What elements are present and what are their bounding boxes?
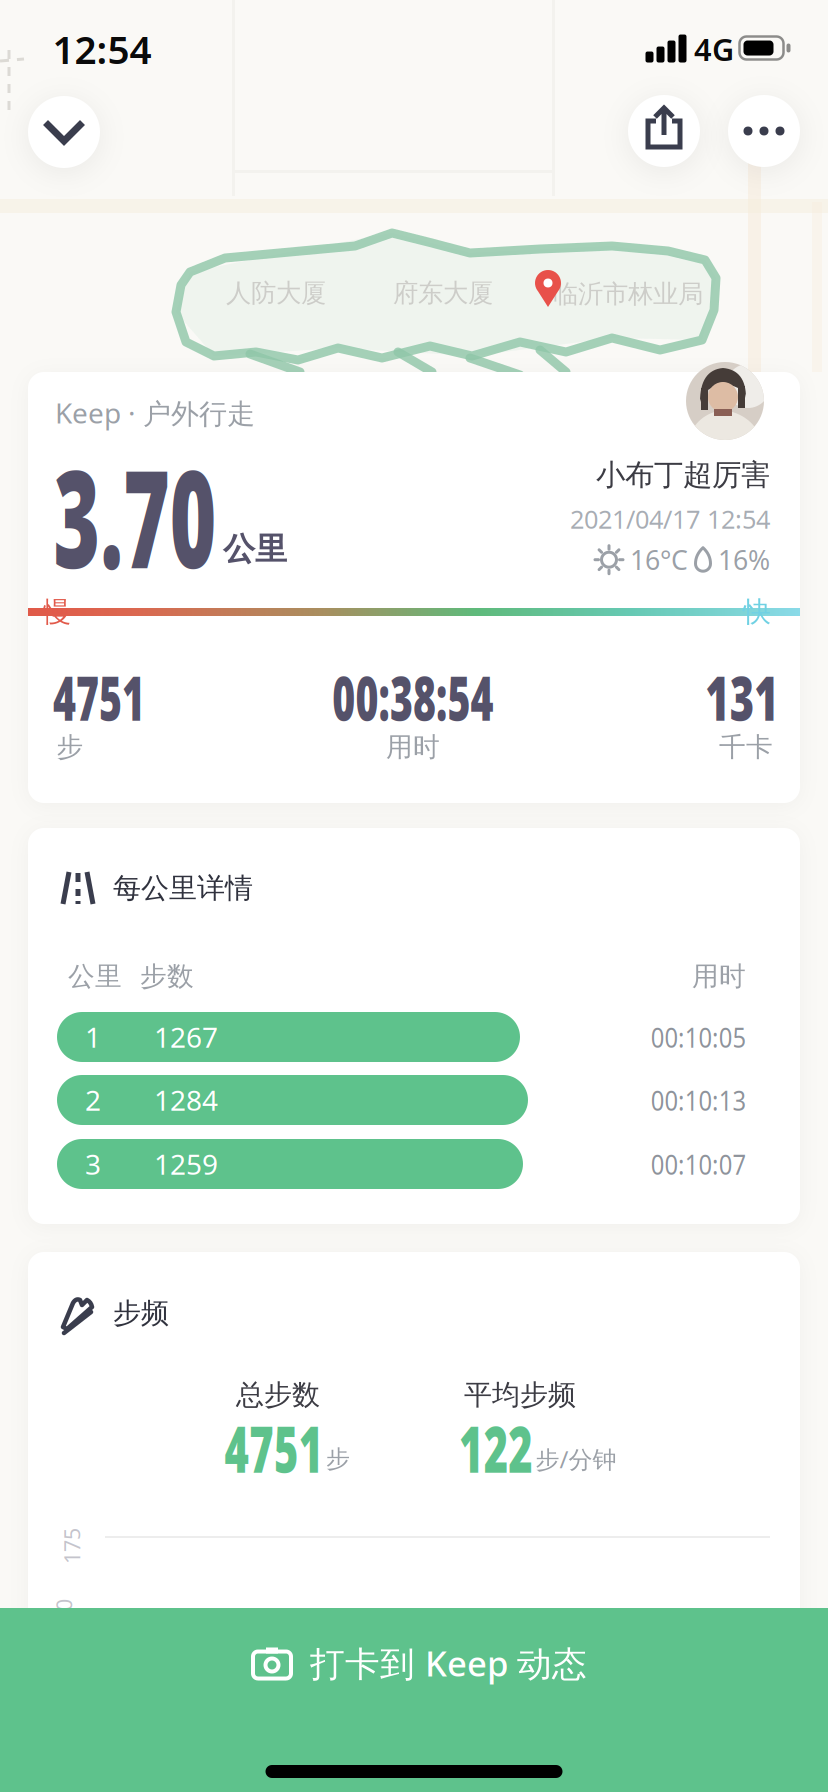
staticText: 4751 — [27, 656, 171, 738]
staticText: 4G — [694, 29, 734, 69]
staticText: 慢 — [43, 595, 71, 629]
staticText: 快 — [743, 595, 771, 629]
staticText: 00:38:54 — [287, 656, 539, 738]
staticText: 1267 — [154, 1018, 218, 1056]
staticText: 临沂市林业局 — [553, 278, 703, 309]
staticText: 步/分钟 — [535, 1443, 616, 1475]
staticText: 16% — [718, 542, 770, 577]
staticText: Keep · 户外行走 — [55, 394, 255, 431]
staticText: 千卡 — [719, 731, 773, 763]
staticText: 1259 — [154, 1145, 218, 1183]
staticText: 16°C — [630, 542, 688, 577]
staticText: 122 — [439, 1405, 553, 1490]
staticText: 公里 — [223, 529, 287, 569]
staticText: 175 — [54, 1532, 90, 1560]
staticText: 步数 — [140, 960, 194, 993]
staticText: 每公里详情 — [113, 871, 253, 905]
staticText: 1284 — [154, 1081, 218, 1119]
staticText: 小布丁超厉害 — [596, 457, 770, 493]
staticText: 平均步频 — [464, 1378, 576, 1412]
staticText: 2 — [85, 1081, 101, 1119]
staticText: 用时 — [386, 731, 440, 763]
staticText: 1 — [85, 1018, 101, 1056]
staticText: 步 — [326, 1444, 350, 1474]
button[interactable]: 打卡到 Keep 动态 — [0, 1608, 828, 1792]
staticText: 打卡到 Keep 动态 — [310, 1640, 587, 1686]
staticText: 12:54 — [52, 23, 151, 75]
staticText: 00:10:07 — [634, 1145, 746, 1183]
staticText: 公里 — [68, 960, 122, 993]
button[interactable]: 更多 — [728, 95, 800, 167]
staticText: 用时 — [692, 960, 746, 993]
staticText: 步频 — [113, 1296, 169, 1330]
staticText: 总步数 — [236, 1378, 320, 1412]
staticText: 步 — [56, 731, 83, 763]
staticText: 00:10:05 — [634, 1018, 746, 1056]
button[interactable]: 分享 — [628, 95, 700, 167]
staticText: 人防大厦 — [226, 277, 326, 308]
staticText: 131 — [688, 656, 796, 738]
button[interactable]: 收起 — [28, 96, 100, 168]
staticText: 府东大厦 — [393, 277, 493, 308]
staticText: 3.70 — [0, 427, 273, 605]
staticText: 150 — [46, 1603, 82, 1631]
staticText: 3 — [85, 1145, 101, 1183]
staticText: 00:10:13 — [634, 1081, 746, 1119]
staticText: 4751 — [198, 1405, 350, 1490]
staticText: 2021/04/17 12:54 — [570, 502, 770, 536]
